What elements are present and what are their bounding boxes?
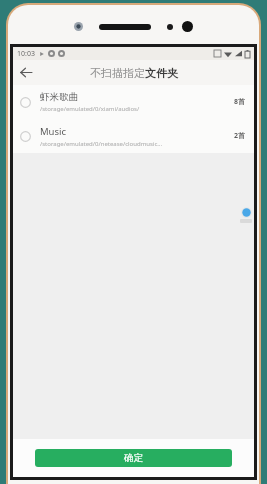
button[interactable]: 虾米歌曲 (13, 85, 254, 119)
staticText: /storage/emulated/0/netease/cloudmusic..… (40, 140, 163, 148)
staticText: 8首 (234, 97, 246, 107)
staticText: /storage/emulated/0/xiami/audios/ (40, 105, 140, 113)
staticText: Music (40, 125, 67, 138)
staticText: 10:03 (17, 49, 35, 59)
staticText: 文件夹 (145, 66, 178, 80)
button[interactable]: Back (13, 60, 39, 85)
staticText: 不扫描指定 (90, 66, 145, 80)
staticText: 2首 (234, 131, 246, 141)
staticText: 确定 (124, 452, 143, 464)
button[interactable]: 确定 (35, 449, 232, 467)
staticText: 虾米歌曲 (40, 91, 78, 103)
button[interactable]: Music (13, 119, 254, 153)
